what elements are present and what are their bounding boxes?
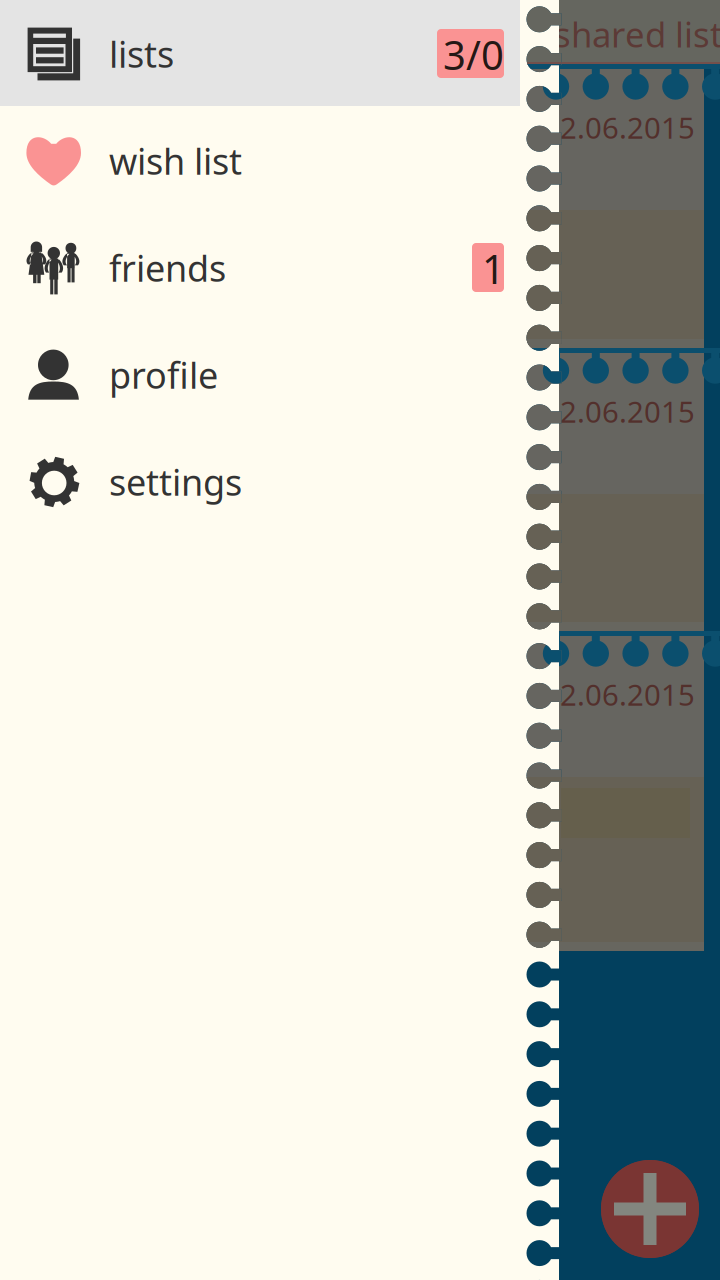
button[interactable]: friends <box>0 214 520 320</box>
staticText: lists <box>109 30 174 78</box>
staticText: shared lists <box>554 11 720 57</box>
button[interactable]: lists <box>0 0 520 106</box>
staticText: 3/0 <box>443 28 504 81</box>
staticText: friends <box>109 244 226 292</box>
button[interactable]: wish list <box>0 107 520 213</box>
staticText: 2.06.2015 <box>560 392 695 431</box>
staticText: profile <box>109 351 218 399</box>
button[interactable]: profile <box>0 321 520 427</box>
staticText: 2.06.2015 <box>560 675 695 714</box>
staticText: 2.06.2015 <box>560 675 695 714</box>
staticText: 1 <box>482 242 505 295</box>
staticText: settings <box>109 458 242 506</box>
staticText: 2.06.2015 <box>560 108 695 147</box>
button[interactable]: New list <box>601 1160 699 1258</box>
staticText: 2.06.2015 <box>560 392 695 431</box>
button[interactable]: settings <box>0 428 520 534</box>
staticText: wish list <box>109 137 242 185</box>
staticText: 2.06.2015 <box>560 108 695 147</box>
staticText: shared lists <box>554 11 720 57</box>
